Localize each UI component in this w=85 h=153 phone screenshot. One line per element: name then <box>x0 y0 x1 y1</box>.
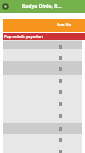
staticText: Pop müzik yayınları <box>4 34 44 39</box>
staticText: Sıra No <box>57 22 72 27</box>
button[interactable] <box>3 63 82 74</box>
button[interactable] <box>3 75 82 86</box>
button[interactable]: App logo <box>1 2 10 11</box>
button[interactable] <box>3 41 82 52</box>
button[interactable] <box>3 98 82 109</box>
button[interactable] <box>3 146 82 153</box>
button[interactable] <box>3 52 82 63</box>
button[interactable] <box>3 134 82 145</box>
button[interactable] <box>3 123 82 134</box>
button[interactable] <box>3 86 82 97</box>
staticText: Radyo Dinle, R... <box>22 3 62 10</box>
button[interactable] <box>3 110 82 121</box>
